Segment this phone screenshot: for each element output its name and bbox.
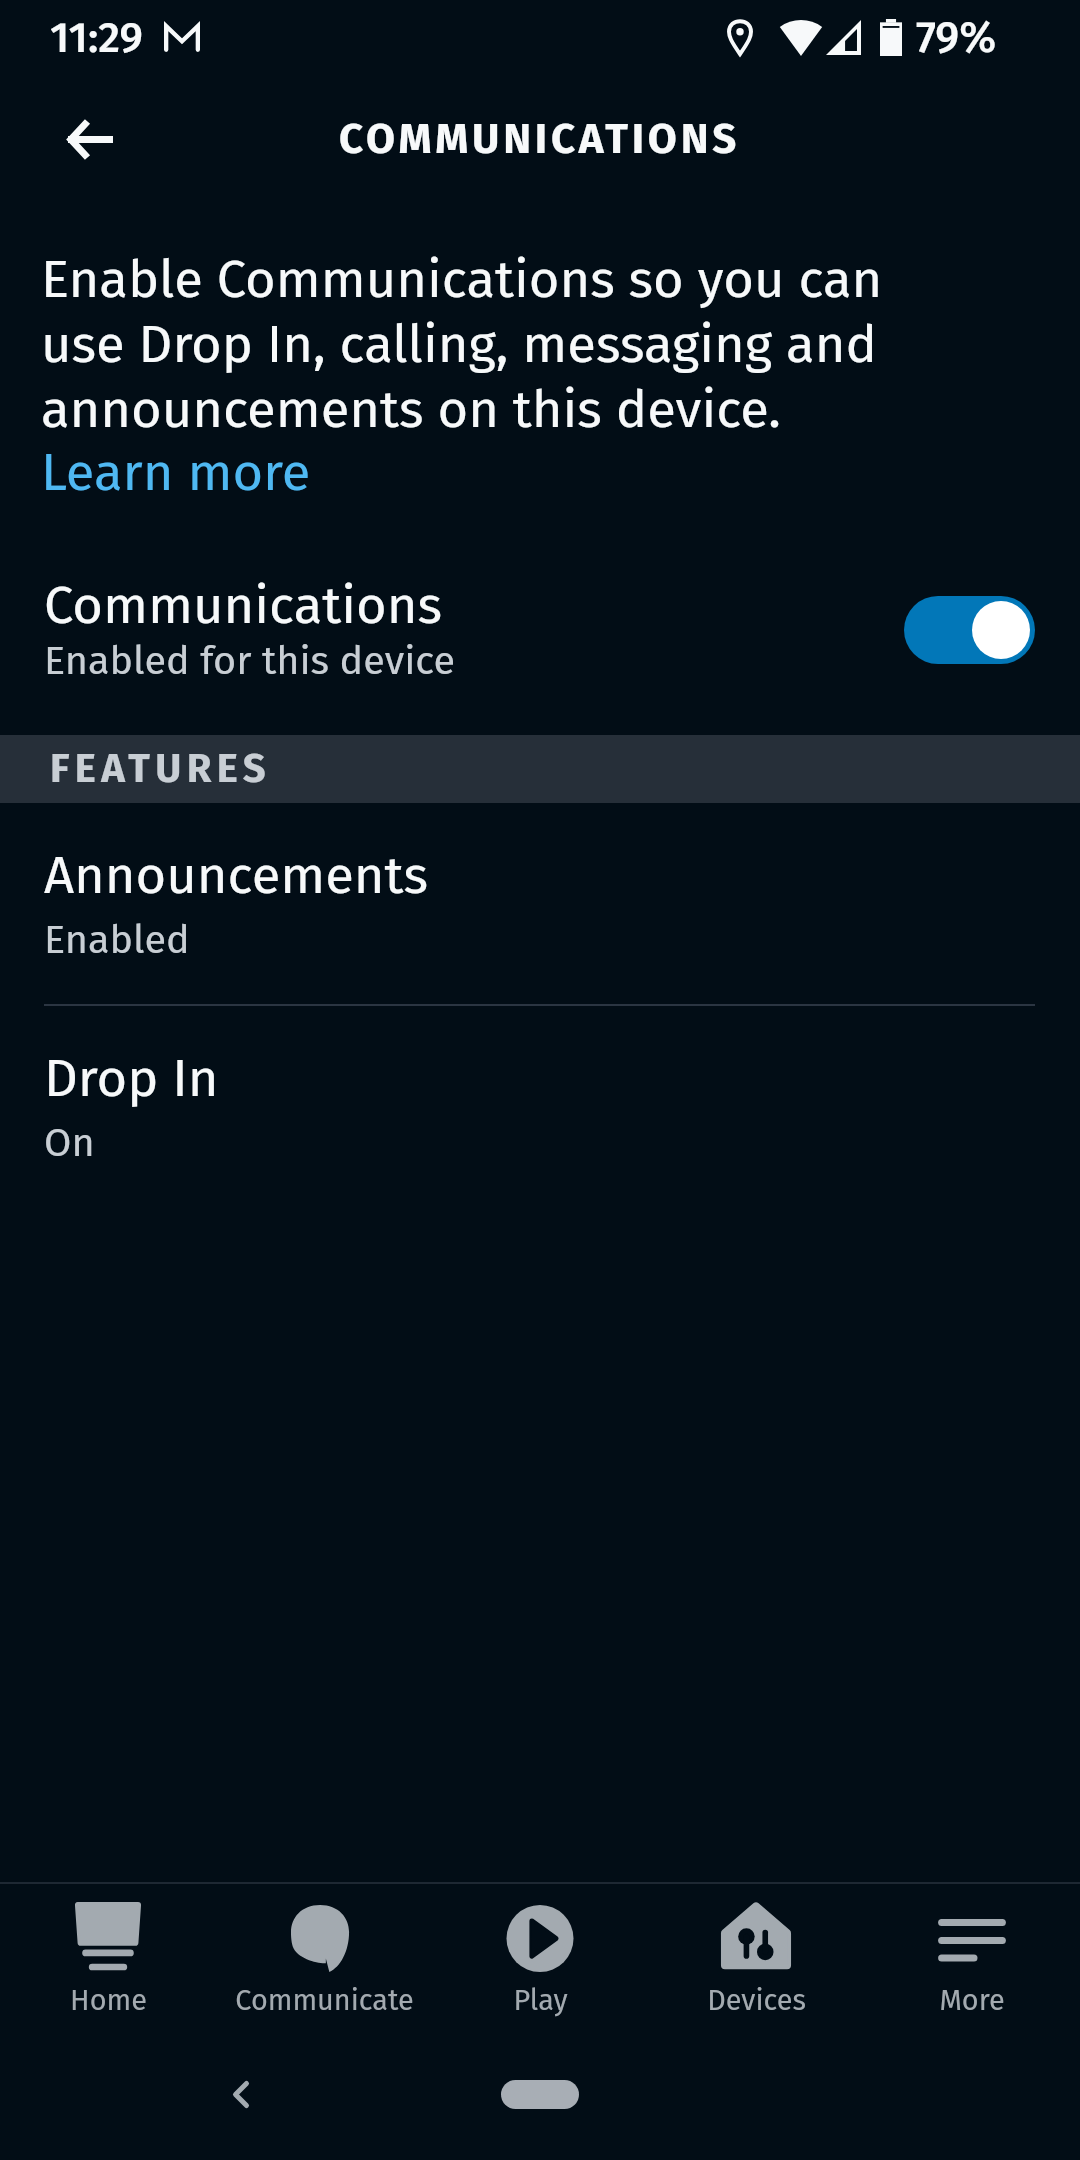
staticText: 11:29 [50,12,143,63]
button[interactable]: Communications toggle [904,596,1035,664]
other: Back [233,2081,249,2108]
button[interactable]: Communicate [216,1884,432,2018]
staticText: Drop In [44,1047,219,1110]
staticText: Play [513,1983,568,2018]
button[interactable]: Communications [0,574,1080,685]
button[interactable]: Home [0,1884,216,2018]
staticText: Home [70,1983,147,2018]
staticText: 79% [916,11,997,64]
button[interactable]: Back [24,74,154,204]
button[interactable]: Play [432,1884,648,2018]
staticText: Enabled [44,916,190,964]
staticText: COMMUNICATIONS [339,114,741,164]
staticText: Enabled for this device [44,637,456,685]
button[interactable]: More [864,1884,1080,2018]
button[interactable]: Drop In [0,1006,1080,1207]
staticText: On [44,1119,95,1167]
staticText: Enable Communications so you can use Dro… [41,248,946,441]
staticText: Announcements [44,844,429,907]
staticText: Communicate [235,1983,414,2018]
staticText: FEATURES [50,745,272,793]
staticText: Learn more [41,441,311,504]
button[interactable]: Learn more [41,441,311,504]
staticText: More [939,1983,1005,2018]
staticText: Devices [707,1983,806,2018]
staticText: Communications [44,574,442,637]
button[interactable]: Devices [648,1884,864,2018]
button[interactable]: Announcements [0,803,1080,1004]
